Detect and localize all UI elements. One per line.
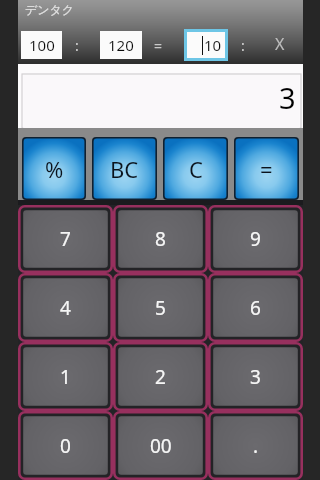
staticText: %	[45, 154, 64, 184]
staticText: 3	[279, 78, 296, 117]
button[interactable]: =	[234, 137, 299, 200]
button[interactable]: 0	[18, 411, 113, 480]
staticText: 00	[150, 433, 172, 459]
staticText: 100	[29, 35, 55, 55]
staticText: 4	[60, 295, 71, 321]
staticText: X	[275, 33, 285, 55]
button[interactable]: 9	[208, 205, 303, 273]
staticText: .	[253, 433, 259, 459]
staticText: デンタク	[25, 2, 75, 17]
button[interactable]: .	[208, 411, 303, 480]
button[interactable]: C	[163, 137, 228, 200]
button[interactable]: 3	[208, 342, 303, 411]
button[interactable]: 100	[21, 31, 62, 59]
button[interactable]: 4	[18, 273, 113, 342]
staticText: 9	[250, 226, 261, 252]
staticText: 10	[204, 35, 222, 55]
staticText: 8	[155, 226, 166, 252]
button[interactable]: BC	[92, 137, 157, 200]
staticText: :	[75, 36, 79, 55]
button[interactable]: 1	[18, 342, 113, 411]
staticText: 3	[250, 364, 261, 390]
button[interactable]: 8	[113, 205, 208, 273]
staticText: C	[189, 154, 203, 184]
button[interactable]: 120	[100, 31, 142, 59]
button[interactable]: 6	[208, 273, 303, 342]
staticText: 6	[250, 295, 261, 321]
button[interactable]: %	[22, 137, 86, 200]
staticText: 120	[108, 35, 134, 55]
button[interactable]: 10	[187, 32, 225, 58]
staticText: 2	[155, 364, 166, 390]
staticText: =	[154, 36, 163, 55]
staticText: :	[241, 36, 245, 55]
button[interactable]: Clear	[266, 28, 294, 60]
staticText: 7	[60, 226, 71, 252]
staticText: 1	[60, 364, 71, 390]
staticText: BC	[110, 154, 139, 184]
button[interactable]: 7	[18, 205, 113, 273]
staticText: 5	[155, 295, 166, 321]
button[interactable]: 00	[113, 411, 208, 480]
button[interactable]: 2	[113, 342, 208, 411]
staticText: =	[260, 154, 273, 184]
staticText: 0	[60, 433, 71, 459]
button[interactable]: 5	[113, 273, 208, 342]
